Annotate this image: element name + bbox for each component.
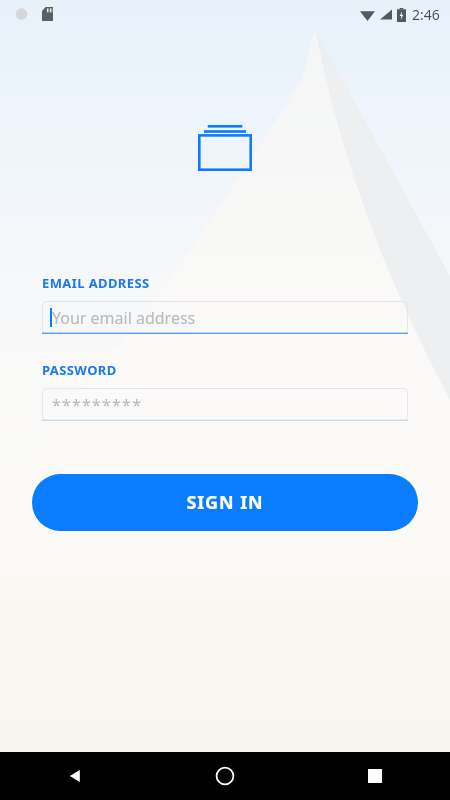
staticText: *********	[52, 394, 143, 416]
button[interactable]: Home	[150, 752, 300, 800]
button[interactable]: Back	[0, 752, 150, 800]
staticText: EMAIL ADDRESS	[42, 274, 150, 292]
staticText: 2:46	[412, 5, 440, 24]
button[interactable]: Your email address	[42, 301, 408, 334]
staticText: SIGN IN	[186, 490, 264, 515]
button[interactable]: *********	[42, 388, 408, 421]
button[interactable]: SIGN IN	[32, 474, 418, 531]
staticText: Your email address	[52, 307, 196, 329]
button[interactable]: Recent apps	[300, 752, 450, 800]
staticText: PASSWORD	[42, 361, 117, 379]
